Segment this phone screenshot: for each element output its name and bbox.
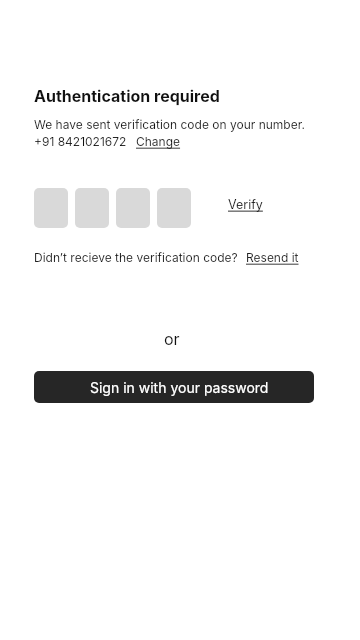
staticText: or (164, 329, 180, 348)
button[interactable]: Change (136, 134, 181, 149)
button[interactable] (157, 188, 191, 228)
staticText: We have sent verification code on your n… (34, 117, 305, 132)
button[interactable]: Resend it (246, 250, 299, 265)
button[interactable]: Verify (228, 197, 263, 212)
button[interactable] (116, 188, 150, 228)
staticText: Didn’t recieve the verification code? (34, 250, 238, 265)
button[interactable]: Sign in with your password (34, 371, 314, 403)
staticText: Authentication required (34, 86, 220, 105)
staticText: +91 8421021672 (34, 134, 127, 149)
staticText: Sign in with your password (90, 379, 269, 396)
button[interactable] (75, 188, 109, 228)
button[interactable] (34, 188, 68, 228)
